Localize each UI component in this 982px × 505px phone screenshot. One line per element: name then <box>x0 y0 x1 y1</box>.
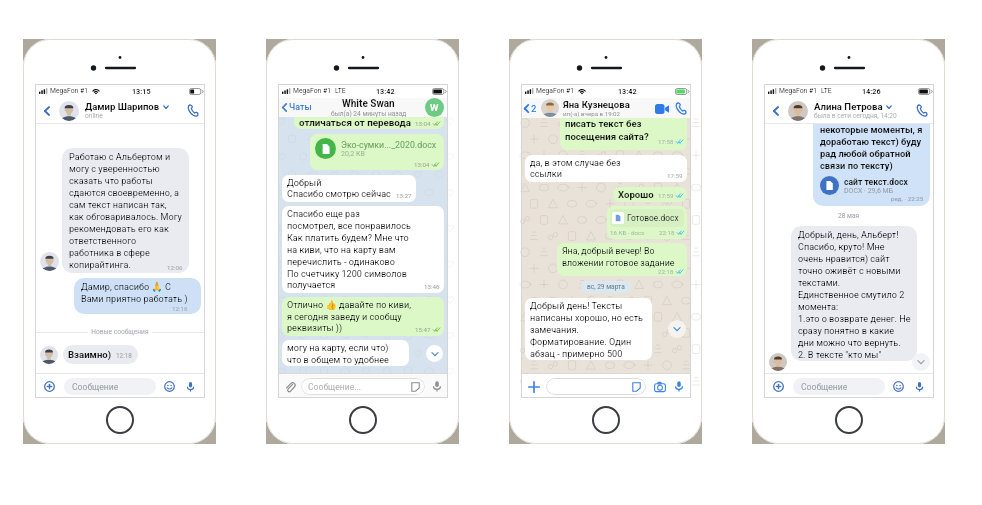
staticText: 13:42 <box>376 87 395 95</box>
button[interactable]: Back <box>521 98 691 118</box>
staticText: был(а) 24 минуты назад <box>331 110 407 117</box>
button[interactable]: Back to chats <box>282 102 312 113</box>
button[interactable]: Call <box>671 99 690 118</box>
button[interactable]: Back <box>35 98 59 123</box>
button[interactable]: Яна, добрый вечер! Во вложении готовое з… <box>557 243 687 276</box>
staticText: Отлично 👍 давайте по киви, я сегодня зав… <box>287 300 412 323</box>
staticText: MegaFon #1 <box>293 87 332 95</box>
staticText: Дамир Шарипов <box>85 101 160 112</box>
staticText: Алина Петрова <box>814 101 883 112</box>
button[interactable]: Дамир, спасибо 🙏 С Вами приятно работать… <box>74 278 201 314</box>
staticText: отличаться от перевода <box>299 117 411 128</box>
staticText: 17:59 <box>658 192 674 199</box>
button[interactable]: некоторые моменты, я доработаю текст) бу… <box>813 124 930 206</box>
staticText: 2 <box>531 103 537 114</box>
staticText: online <box>85 112 103 120</box>
button[interactable]: Video call <box>652 99 671 118</box>
staticText: 13:46 <box>424 283 440 290</box>
staticText: Сообщение <box>72 382 119 392</box>
button[interactable]: Call <box>910 98 934 123</box>
button[interactable]: Готовое.docx <box>607 206 687 239</box>
staticText: Хорошо <box>618 189 654 200</box>
staticText: Взаимно) <box>68 349 112 360</box>
staticText: MegaFon #1 <box>50 87 89 95</box>
staticText: 13:42 <box>618 87 637 95</box>
button[interactable]: Attach file <box>283 380 296 393</box>
button[interactable]: Back <box>35 98 205 123</box>
staticText: Сообщение... <box>308 382 362 392</box>
staticText: LTE <box>821 87 832 95</box>
staticText: 22:18 <box>659 229 675 236</box>
button[interactable]: Добрый день! Тексты написаны хорошо, но … <box>525 298 652 360</box>
button[interactable]: Back <box>524 103 537 114</box>
staticText: Спасибо смотрю сейчас <box>287 189 391 200</box>
button[interactable]: Attach <box>527 380 540 393</box>
staticText: сайт текст.docx <box>844 177 908 187</box>
button[interactable]: Call <box>181 98 205 123</box>
button[interactable]: Emoji <box>893 381 904 392</box>
staticText: Добрый <box>287 178 322 189</box>
button[interactable]: Эко-сумки..._2020.docx <box>310 134 444 170</box>
staticText: Добрый день! Тексты написаны хорошо, но … <box>530 301 644 360</box>
button[interactable]: писать текст без посещения сайта? <box>560 118 687 150</box>
button[interactable]: Отлично 👍 давайте по киви, я сегодня зав… <box>282 297 444 336</box>
button[interactable]: Сообщение <box>793 378 885 395</box>
staticText: MegaFon #1 <box>536 87 575 95</box>
staticText: DOCX · 29,6 МБ <box>844 187 894 195</box>
staticText: 20,2 КВ <box>341 150 365 158</box>
staticText: 13:04 <box>414 161 430 168</box>
staticText: Яна, добрый вечер! Во вложении готовое з… <box>562 246 675 268</box>
button[interactable]: Attach <box>44 381 55 392</box>
staticText: 13:27 <box>396 192 412 199</box>
button[interactable]: Back <box>764 98 934 123</box>
button[interactable]: могу на карту, если что) что в общем то … <box>282 340 409 366</box>
button[interactable]: Emoji <box>164 381 175 392</box>
staticText: White Swan <box>342 98 395 110</box>
button[interactable]: Добрый <box>282 175 416 202</box>
button[interactable]: Camera <box>653 380 666 393</box>
button[interactable]: Спасибо еще раз посмотрел, все понравило… <box>282 206 444 293</box>
staticText: реквизиты )) <box>287 323 343 334</box>
staticText: да, в этом случае без <box>530 158 621 169</box>
staticText: Эко-сумки..._2020.docx <box>341 140 437 150</box>
staticText: Работаю с Альбертом и могу с уверенность… <box>69 152 182 271</box>
button[interactable]: Attach <box>773 381 784 392</box>
staticText: 22:18 <box>658 268 674 275</box>
button[interactable]: Сообщение... <box>301 378 425 395</box>
button[interactable]: Добрый, день, Альберт! Спасибо, круто! М… <box>791 226 917 361</box>
button[interactable]: Voice message <box>431 380 443 392</box>
staticText: Спасибо еще раз посмотрел, все понравило… <box>287 209 411 280</box>
button[interactable]: Сообщение <box>64 378 156 395</box>
staticText: 15:47 <box>415 326 431 333</box>
staticText: Добрый, день, Альберт! Спасибо, круто! М… <box>798 230 911 361</box>
staticText: 17:59 <box>667 172 683 179</box>
button[interactable]: Back to chats <box>278 98 448 117</box>
staticText: Чаты <box>289 102 312 113</box>
button[interactable] <box>546 378 646 395</box>
staticText: ил(-а) вчера в 19:02 <box>563 110 621 117</box>
staticText: Яна Кузнецова <box>563 99 630 110</box>
button[interactable]: Scroll to bottom <box>912 353 930 371</box>
button[interactable]: Хорошо <box>613 187 687 202</box>
staticText: ред. · 22:25 <box>891 195 924 202</box>
staticText: 28 мая <box>838 212 860 220</box>
staticText: 12:18 <box>116 352 132 360</box>
button[interactable]: отличаться от перевода <box>294 117 444 129</box>
button[interactable]: Voice message <box>673 380 685 392</box>
button[interactable]: Взаимно) <box>63 345 138 364</box>
button[interactable]: Profile <box>425 98 444 117</box>
staticText: некоторые моменты, я доработаю текст) бу… <box>820 124 923 171</box>
staticText: 13:15 <box>132 87 151 95</box>
button[interactable]: Scroll to bottom <box>668 320 686 338</box>
button[interactable]: Back <box>764 98 788 123</box>
button[interactable]: да, в этом случае без <box>525 155 687 182</box>
staticText: W <box>430 102 439 113</box>
staticText: ссылки <box>530 169 563 180</box>
button[interactable]: Voice message <box>185 381 196 392</box>
button[interactable]: Работаю с Альбертом и могу с уверенность… <box>62 148 189 273</box>
button[interactable]: Voice message <box>914 381 925 392</box>
staticText: Дамир, спасибо 🙏 С Вами приятно работать… <box>81 282 188 305</box>
button[interactable]: Scroll to bottom <box>426 345 443 362</box>
staticText: вс, 29 марта <box>587 283 625 291</box>
staticText: Новые сообщения <box>88 328 152 336</box>
